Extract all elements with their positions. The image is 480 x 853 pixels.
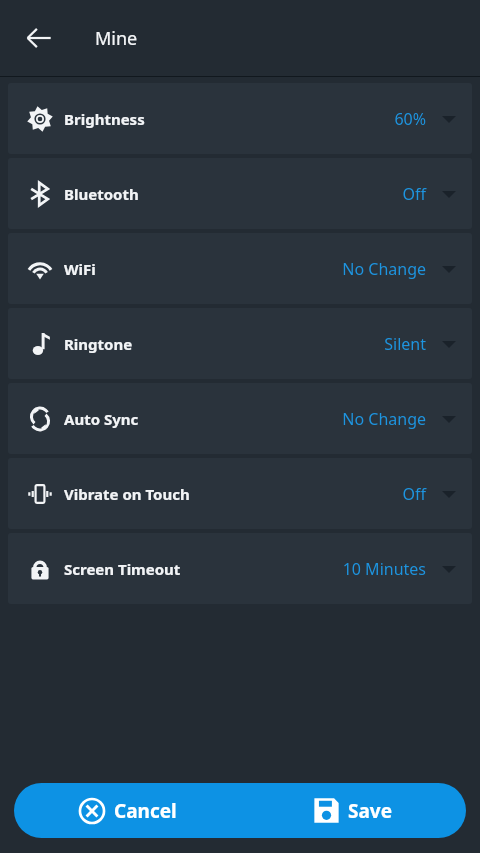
button[interactable]: Auto Sync <box>8 383 472 454</box>
button[interactable]: Brightness <box>8 83 472 154</box>
staticText: Off <box>402 183 426 205</box>
button[interactable]: Bluetooth <box>8 158 472 229</box>
staticText: Bluetooth <box>64 184 139 204</box>
staticText: Off <box>402 483 426 505</box>
staticText: Brightness <box>64 109 145 129</box>
button[interactable]: Save <box>240 783 466 838</box>
staticText: 60% <box>394 108 426 130</box>
button[interactable]: Back <box>14 13 64 63</box>
staticText: Cancel <box>114 798 177 824</box>
button[interactable]: Vibrate on Touch <box>8 458 472 529</box>
staticText: WiFi <box>64 259 96 279</box>
button[interactable]: Ringtone <box>8 308 472 379</box>
staticText: Mine <box>95 26 138 51</box>
staticText: Auto Sync <box>64 409 139 429</box>
staticText: Vibrate on Touch <box>64 484 190 504</box>
staticText: Screen Timeout <box>64 559 181 579</box>
staticText: No Change <box>342 408 426 430</box>
button[interactable]: WiFi <box>8 233 472 304</box>
staticText: 10 Minutes <box>342 558 426 580</box>
staticText: Silent <box>384 333 426 355</box>
button[interactable]: Screen Timeout <box>8 533 472 604</box>
staticText: No Change <box>342 258 426 280</box>
button[interactable]: Cancel <box>14 783 240 838</box>
staticText: Save <box>348 798 393 824</box>
staticText: Ringtone <box>64 334 133 354</box>
